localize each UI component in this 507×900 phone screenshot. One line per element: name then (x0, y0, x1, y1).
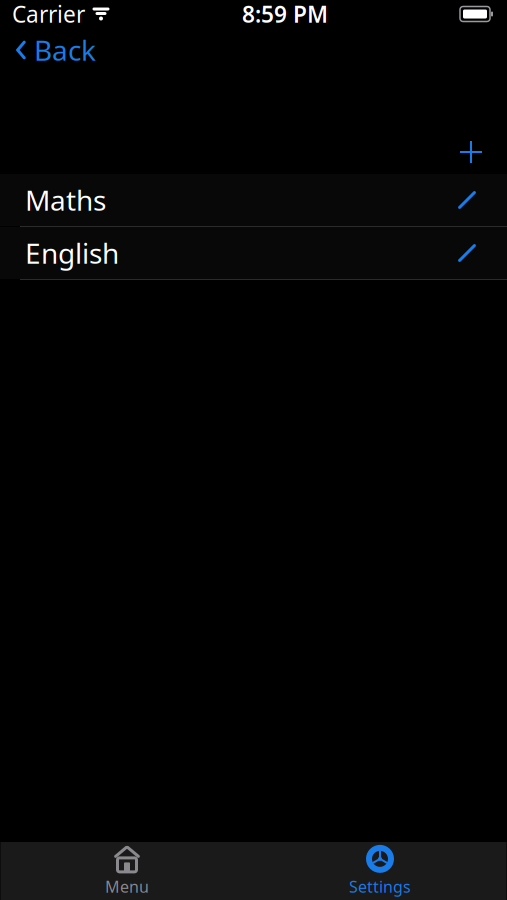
button[interactable]: Add subject (449, 130, 493, 174)
button[interactable]: English (0, 227, 507, 280)
button[interactable]: Menu (0, 842, 253, 900)
staticText: 8:59 PM (242, 0, 328, 29)
staticText: English (25, 234, 119, 272)
staticText: Back (34, 31, 96, 69)
staticText: Carrier (12, 0, 85, 29)
button[interactable]: Back (0, 28, 108, 72)
button[interactable]: Maths (0, 174, 507, 227)
staticText: Menu (105, 876, 149, 897)
staticText: Maths (25, 181, 106, 219)
button[interactable]: Settings (253, 842, 506, 900)
staticText: Settings (349, 876, 411, 897)
